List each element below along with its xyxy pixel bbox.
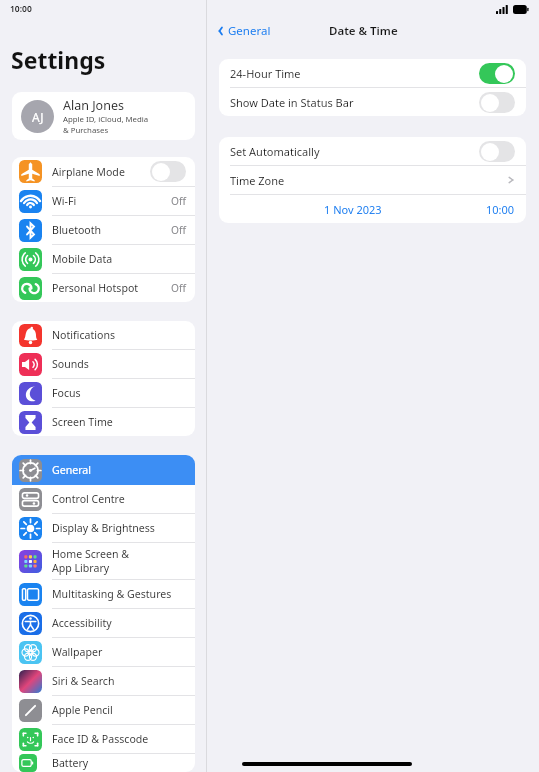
button[interactable]: AJ — [12, 92, 195, 140]
button[interactable]: Home Screen & — [12, 543, 195, 580]
staticText: Apple Pencil — [52, 703, 113, 717]
button[interactable]: Battery — [12, 754, 195, 772]
button[interactable]: 1 Nov 2023 — [230, 195, 515, 223]
staticText: App Library — [52, 561, 110, 575]
button[interactable]: Show Date in Status Bar — [219, 88, 526, 116]
staticText: Personal Hotspot — [52, 281, 139, 295]
button[interactable]: Accessibility — [12, 609, 195, 638]
button[interactable]: Show Date in Status Bar — [479, 92, 515, 113]
staticText: Multitasking & Gestures — [52, 587, 172, 601]
button[interactable]: Set Automatically — [479, 141, 515, 162]
button[interactable]: 24-Hour Time — [479, 63, 515, 84]
staticText: Time Zone — [230, 173, 505, 188]
staticText: Screen Time — [52, 415, 113, 429]
button[interactable]: General — [215, 23, 271, 39]
staticText: Home Screen & — [52, 547, 129, 561]
button[interactable]: Wi-Fi — [12, 187, 195, 216]
button[interactable]: Time Zone — [219, 166, 526, 195]
button[interactable]: 24-Hour Time — [219, 59, 526, 88]
staticText: Battery — [52, 756, 89, 770]
button[interactable]: Mobile Data — [12, 245, 195, 274]
button[interactable]: Sounds — [12, 350, 195, 379]
button[interactable]: Siri & Search — [12, 667, 195, 696]
staticText: Settings — [11, 44, 106, 75]
staticText: Mobile Data — [52, 252, 113, 266]
button[interactable]: Screen Time — [12, 408, 195, 436]
staticText: Notifications — [52, 328, 116, 342]
staticText: Wallpaper — [52, 645, 103, 659]
button[interactable]: Set Automatically — [219, 137, 526, 166]
staticText: Set Automatically — [230, 144, 479, 159]
button[interactable]: Control Centre — [12, 485, 195, 514]
staticText: 10:00 — [10, 3, 32, 15]
button[interactable]: Wallpaper — [12, 638, 195, 667]
staticText: Focus — [52, 386, 81, 400]
button[interactable]: Personal Hotspot — [12, 274, 195, 302]
staticText: Off — [171, 223, 186, 237]
staticText: Airplane Mode — [52, 165, 125, 179]
staticText: Off — [171, 194, 186, 208]
staticText: General — [52, 463, 92, 477]
staticText: Bluetooth — [52, 223, 102, 237]
button[interactable]: Apple Pencil — [12, 696, 195, 725]
other: Time Zone — [505, 175, 515, 185]
staticText: Face ID & Passcode — [52, 732, 149, 746]
button[interactable]: Bluetooth — [12, 216, 195, 245]
button[interactable]: Display & Brightness — [12, 514, 195, 543]
staticText: 1 Nov 2023 — [324, 202, 382, 217]
button[interactable]: Airplane Mode — [150, 161, 186, 182]
staticText: Show Date in Status Bar — [230, 95, 479, 110]
button[interactable]: General — [12, 455, 195, 485]
staticText: Sounds — [52, 357, 89, 371]
staticText: Display & Brightness — [52, 521, 155, 535]
staticText: Date & Time — [329, 23, 398, 39]
button[interactable]: Notifications — [12, 321, 195, 350]
staticText: 24-Hour Time — [230, 66, 479, 81]
staticText: General — [228, 23, 271, 39]
staticText: Control Centre — [52, 492, 125, 506]
button[interactable]: Multitasking & Gestures — [12, 580, 195, 609]
staticText: 10:00 — [486, 202, 515, 217]
staticText: Off — [171, 281, 186, 295]
button[interactable]: Face ID & Passcode — [12, 725, 195, 754]
staticText: Wi-Fi — [52, 194, 77, 208]
staticText: Siri & Search — [52, 674, 115, 688]
staticText: AJ — [32, 109, 44, 125]
staticText: & Purchases — [63, 125, 109, 136]
button[interactable]: Focus — [12, 379, 195, 408]
button[interactable]: Airplane Mode — [12, 157, 195, 187]
staticText: Alan Jones — [63, 97, 124, 114]
staticText: Accessibility — [52, 616, 112, 630]
staticText: Apple ID, iCloud, Media — [63, 114, 149, 125]
